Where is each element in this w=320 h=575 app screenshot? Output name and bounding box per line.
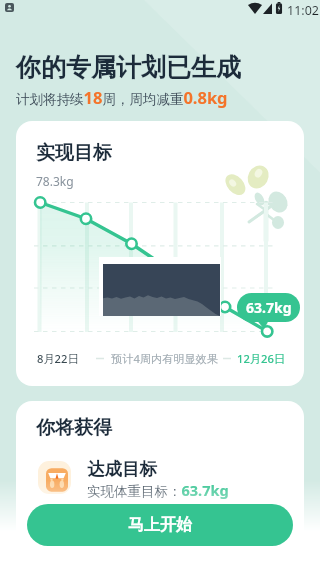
staticText: 实现目标 <box>36 141 112 165</box>
staticText: 计划将持续18周，周均减重0.8kg <box>16 86 228 108</box>
staticText: 12月26日 <box>237 351 285 366</box>
staticText: 实现体重目标：63.7kg <box>87 480 229 500</box>
staticText: 达成目标 <box>87 458 157 480</box>
staticText: 马上开始 <box>128 515 192 535</box>
button[interactable]: 马上开始 <box>27 504 293 546</box>
staticText: 8月22日 <box>37 351 79 366</box>
staticText: 63.7kg <box>246 298 292 317</box>
staticText: 你将获得 <box>36 416 112 440</box>
staticText: 11:02 <box>287 2 319 19</box>
staticText: 你的专属计划已生成 <box>16 52 241 83</box>
staticText: 预计4周内有明显效果 <box>111 351 219 366</box>
staticText: 78.3kg <box>36 173 74 189</box>
